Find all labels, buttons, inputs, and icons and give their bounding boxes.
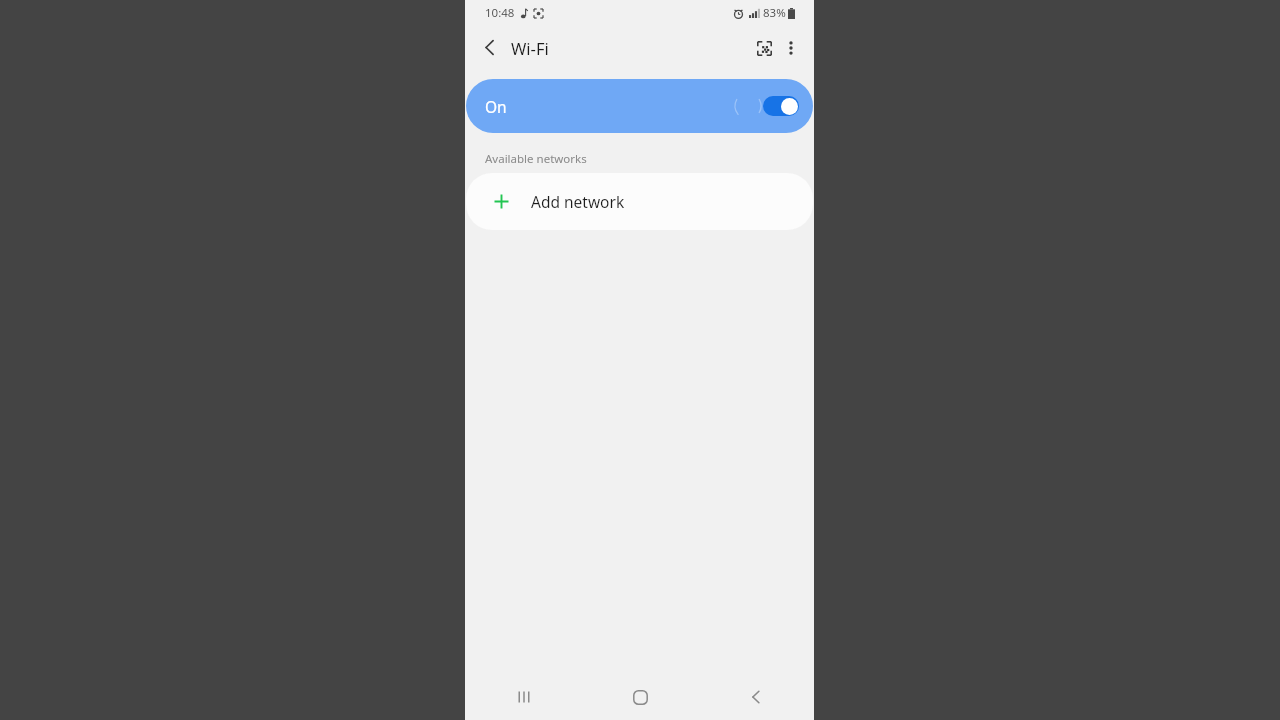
button[interactable]: Wi-Fi on [763, 96, 799, 116]
staticText: On [485, 96, 507, 117]
button[interactable]: Back [465, 33, 505, 62]
button[interactable]: Home [582, 674, 698, 720]
button[interactable]: More options [780, 32, 802, 64]
button[interactable]: Back [698, 674, 814, 720]
button[interactable]: Recent apps [465, 674, 582, 720]
staticText: 83% [763, 5, 786, 21]
button[interactable]: Scan QR code [749, 33, 780, 64]
button[interactable]: On [466, 79, 813, 133]
staticText: Wi-Fi [511, 37, 549, 59]
staticText: Available networks [485, 151, 587, 167]
button[interactable]: Add network [466, 173, 813, 230]
staticText: Add network [531, 191, 625, 212]
staticText: 10:48 [485, 5, 515, 21]
